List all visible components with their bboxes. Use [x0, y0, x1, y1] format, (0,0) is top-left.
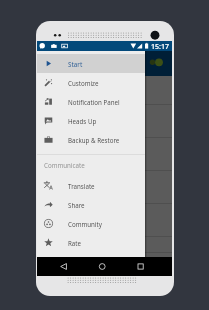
button[interactable]: Customize — [37, 73, 145, 92]
staticText: 15:17 — [151, 42, 169, 52]
staticText: Navigation bar — [48, 211, 97, 221]
staticText: Rate — [68, 239, 82, 247]
staticText: Tap to configure options — [48, 157, 112, 165]
button[interactable]: Start — [37, 54, 145, 73]
staticText: Tap to configure options — [48, 124, 112, 132]
staticText: Tap to configure options — [48, 223, 112, 231]
staticText: Backup & Restore — [68, 136, 120, 144]
staticText: Communicate — [44, 161, 85, 169]
staticText: Community — [68, 220, 102, 228]
staticText: Status bar — [48, 112, 82, 122]
staticText: Customize — [68, 79, 99, 87]
staticText: Start — [68, 60, 83, 68]
staticText: Translate — [68, 182, 95, 190]
staticText: Share — [68, 201, 85, 209]
staticText: Heads Up — [68, 117, 97, 125]
button[interactable]: Notification Panel — [37, 92, 145, 111]
button[interactable]: Share — [37, 195, 145, 214]
button[interactable]: Community — [37, 214, 145, 233]
staticText: Quick settings — [48, 79, 95, 89]
staticText: Notification Panel — [68, 98, 120, 106]
button[interactable]: Rate — [37, 233, 145, 252]
button[interactable]: Translate — [37, 176, 145, 195]
staticText: Lock screen — [48, 178, 87, 188]
staticText: Notifications — [48, 145, 90, 155]
staticText: Tap to configure options — [48, 91, 112, 99]
staticText: Misc — [48, 237, 63, 247]
button[interactable]: Backup & Restore — [37, 130, 145, 149]
button[interactable]: Heads Up — [37, 111, 145, 130]
